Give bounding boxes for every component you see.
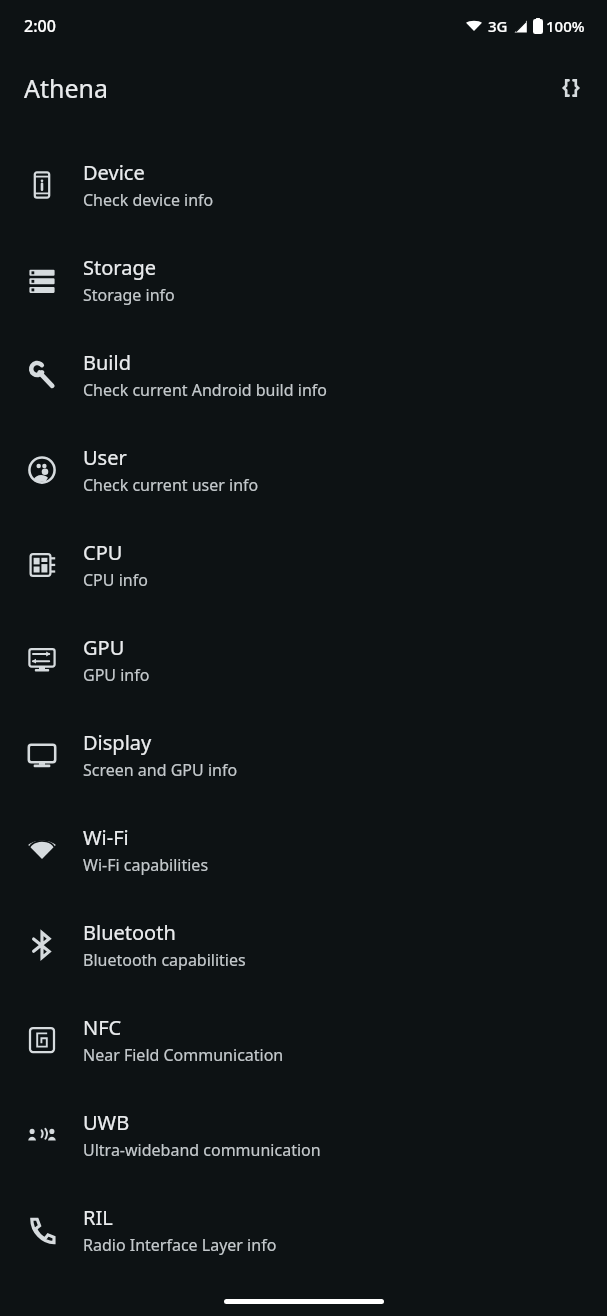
staticText: Athena xyxy=(24,71,109,105)
button[interactable]: Build xyxy=(0,327,607,422)
staticText: Build xyxy=(83,349,131,376)
staticText: Bluetooth capabilities xyxy=(83,949,246,971)
staticText: Device xyxy=(83,159,145,186)
staticText: Check current Android build info xyxy=(83,379,327,401)
staticText: 3G xyxy=(488,16,508,36)
staticText: Check device info xyxy=(83,189,214,211)
button[interactable]: UWB xyxy=(0,1087,607,1182)
staticText: Wi-Fi xyxy=(83,824,129,851)
staticText: UWB xyxy=(83,1109,130,1136)
staticText: Wi-Fi capabilities xyxy=(83,854,209,876)
staticText: Storage xyxy=(83,254,156,281)
staticText: GPU xyxy=(83,634,125,661)
button[interactable]: Bluetooth xyxy=(0,897,607,992)
button[interactable]: GPU xyxy=(0,612,607,707)
staticText: Display xyxy=(83,729,152,756)
button[interactable]: RIL xyxy=(0,1182,607,1277)
staticText: Near Field Communication xyxy=(83,1044,284,1066)
staticText: Ultra-wideband communication xyxy=(83,1139,321,1161)
button[interactable]: Display xyxy=(0,707,607,802)
staticText: RIL xyxy=(83,1204,113,1231)
staticText: NFC xyxy=(83,1014,122,1041)
staticText: Bluetooth xyxy=(83,919,176,946)
staticText: CPU info xyxy=(83,569,148,591)
staticText: Storage info xyxy=(83,284,175,306)
button[interactable]: User xyxy=(0,422,607,517)
staticText: 100% xyxy=(546,16,585,36)
staticText: 2:00 xyxy=(24,15,56,37)
button[interactable]: CPU xyxy=(0,517,607,612)
staticText: User xyxy=(83,444,127,471)
staticText: Screen and GPU info xyxy=(83,759,238,781)
button[interactable]: Developer options xyxy=(547,64,595,112)
staticText: Check current user info xyxy=(83,474,259,496)
button[interactable]: Storage xyxy=(0,232,607,327)
staticText: GPU info xyxy=(83,664,150,686)
staticText: Radio Interface Layer info xyxy=(83,1234,277,1256)
staticText: CPU xyxy=(83,539,123,566)
button[interactable]: Wi-Fi xyxy=(0,802,607,897)
button[interactable]: Device xyxy=(0,137,607,232)
button[interactable]: NFC xyxy=(0,992,607,1087)
